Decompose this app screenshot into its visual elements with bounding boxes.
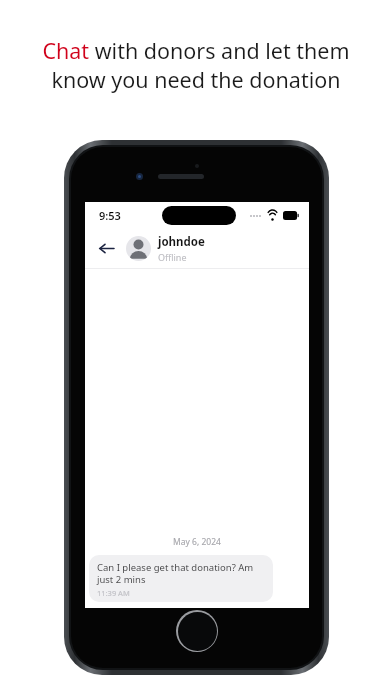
staticText: 11:39 AM [97, 588, 130, 598]
button[interactable]: Can I please get that donation? Am just … [89, 555, 273, 602]
staticText: Can I please get that donation? Am just … [97, 561, 265, 586]
button[interactable]: Home [176, 610, 218, 652]
staticText: Chat with donors and let them know you n… [22, 36, 370, 94]
button[interactable]: Back [93, 235, 119, 261]
staticText: Offline [158, 251, 187, 263]
staticText: johndoe [158, 234, 205, 250]
button[interactable]: johndoe [126, 232, 205, 265]
staticText: May 6, 2024 [85, 536, 309, 548]
staticText: 9:53 [99, 208, 121, 223]
